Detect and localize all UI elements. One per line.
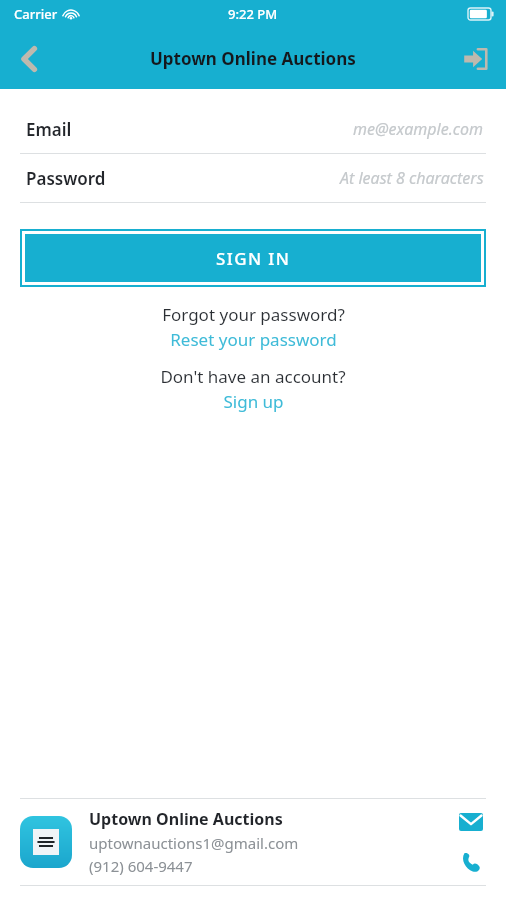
staticText: Email bbox=[26, 118, 72, 141]
button[interactable]: Uptown Online Auctions logo bbox=[20, 816, 72, 868]
staticText: Forgot your password? bbox=[162, 303, 345, 326]
staticText: Don't have an account? bbox=[160, 365, 346, 388]
staticText: Sign up bbox=[223, 390, 284, 413]
staticText: Uptown Online Auctions bbox=[150, 47, 356, 70]
staticText: 9:22 PM bbox=[228, 5, 278, 23]
staticText: Uptown Online Auctions bbox=[89, 808, 283, 830]
staticText: uptownauctions1@gmail.com bbox=[89, 833, 299, 853]
button[interactable]: SIGN IN bbox=[25, 234, 481, 282]
button[interactable]: Sign in bbox=[452, 36, 498, 82]
staticText: At least 8 characters bbox=[340, 167, 484, 189]
button[interactable]: Password bbox=[0, 154, 506, 203]
staticText: Password bbox=[26, 167, 106, 190]
button[interactable]: Email bbox=[0, 105, 506, 154]
staticText: me@example.com bbox=[353, 118, 484, 140]
button[interactable]: Call bbox=[456, 847, 486, 877]
staticText: Carrier bbox=[14, 5, 58, 23]
button[interactable]: Reset your password bbox=[170, 328, 337, 351]
staticText: SIGN IN bbox=[216, 247, 291, 270]
staticText: (912) 604-9447 bbox=[89, 856, 193, 876]
staticText: Reset your password bbox=[170, 328, 337, 351]
button[interactable]: Email bbox=[456, 807, 486, 837]
button[interactable]: Sign up bbox=[223, 390, 284, 413]
button[interactable]: Back bbox=[6, 36, 52, 82]
